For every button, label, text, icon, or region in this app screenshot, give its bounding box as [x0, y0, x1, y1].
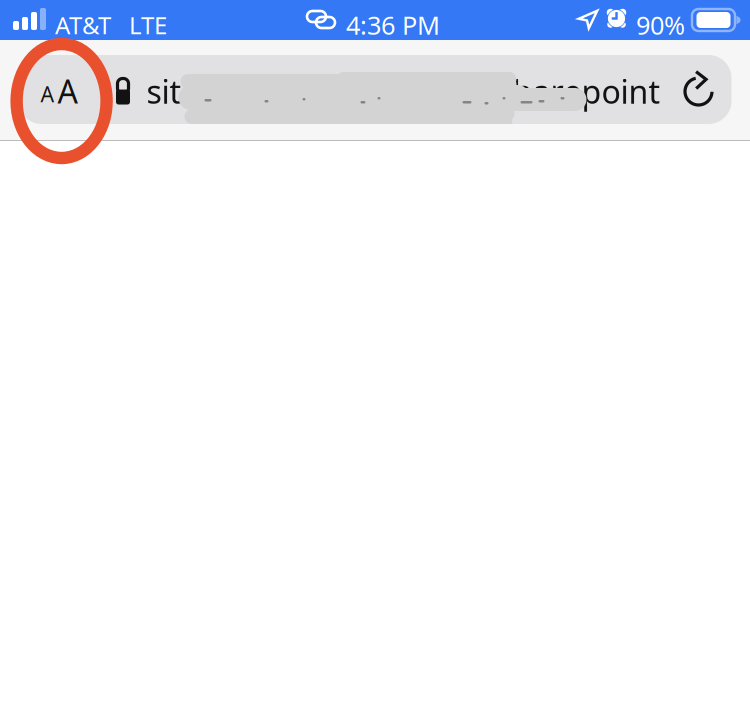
- button[interactable]: Reload page: [672, 57, 724, 126]
- staticText: A: [40, 80, 54, 108]
- staticText: LTE: [129, 9, 167, 41]
- staticText: 90%: [636, 8, 685, 42]
- staticText: A: [57, 70, 77, 112]
- staticText: 4:36 PM: [346, 8, 440, 42]
- staticText: AT&T: [55, 9, 111, 41]
- staticText: sites.company-internal.sharepoint: [146, 70, 660, 112]
- button[interactable]: Page settings: [18, 55, 100, 124]
